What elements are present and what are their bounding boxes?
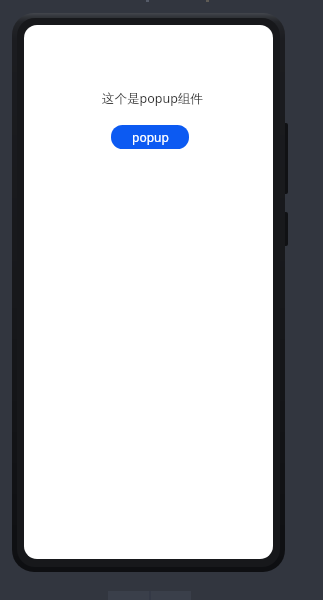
staticText: 这个是popup组件 [102,90,203,107]
button[interactable]: popup [111,125,189,149]
staticText: popup [132,129,169,145]
